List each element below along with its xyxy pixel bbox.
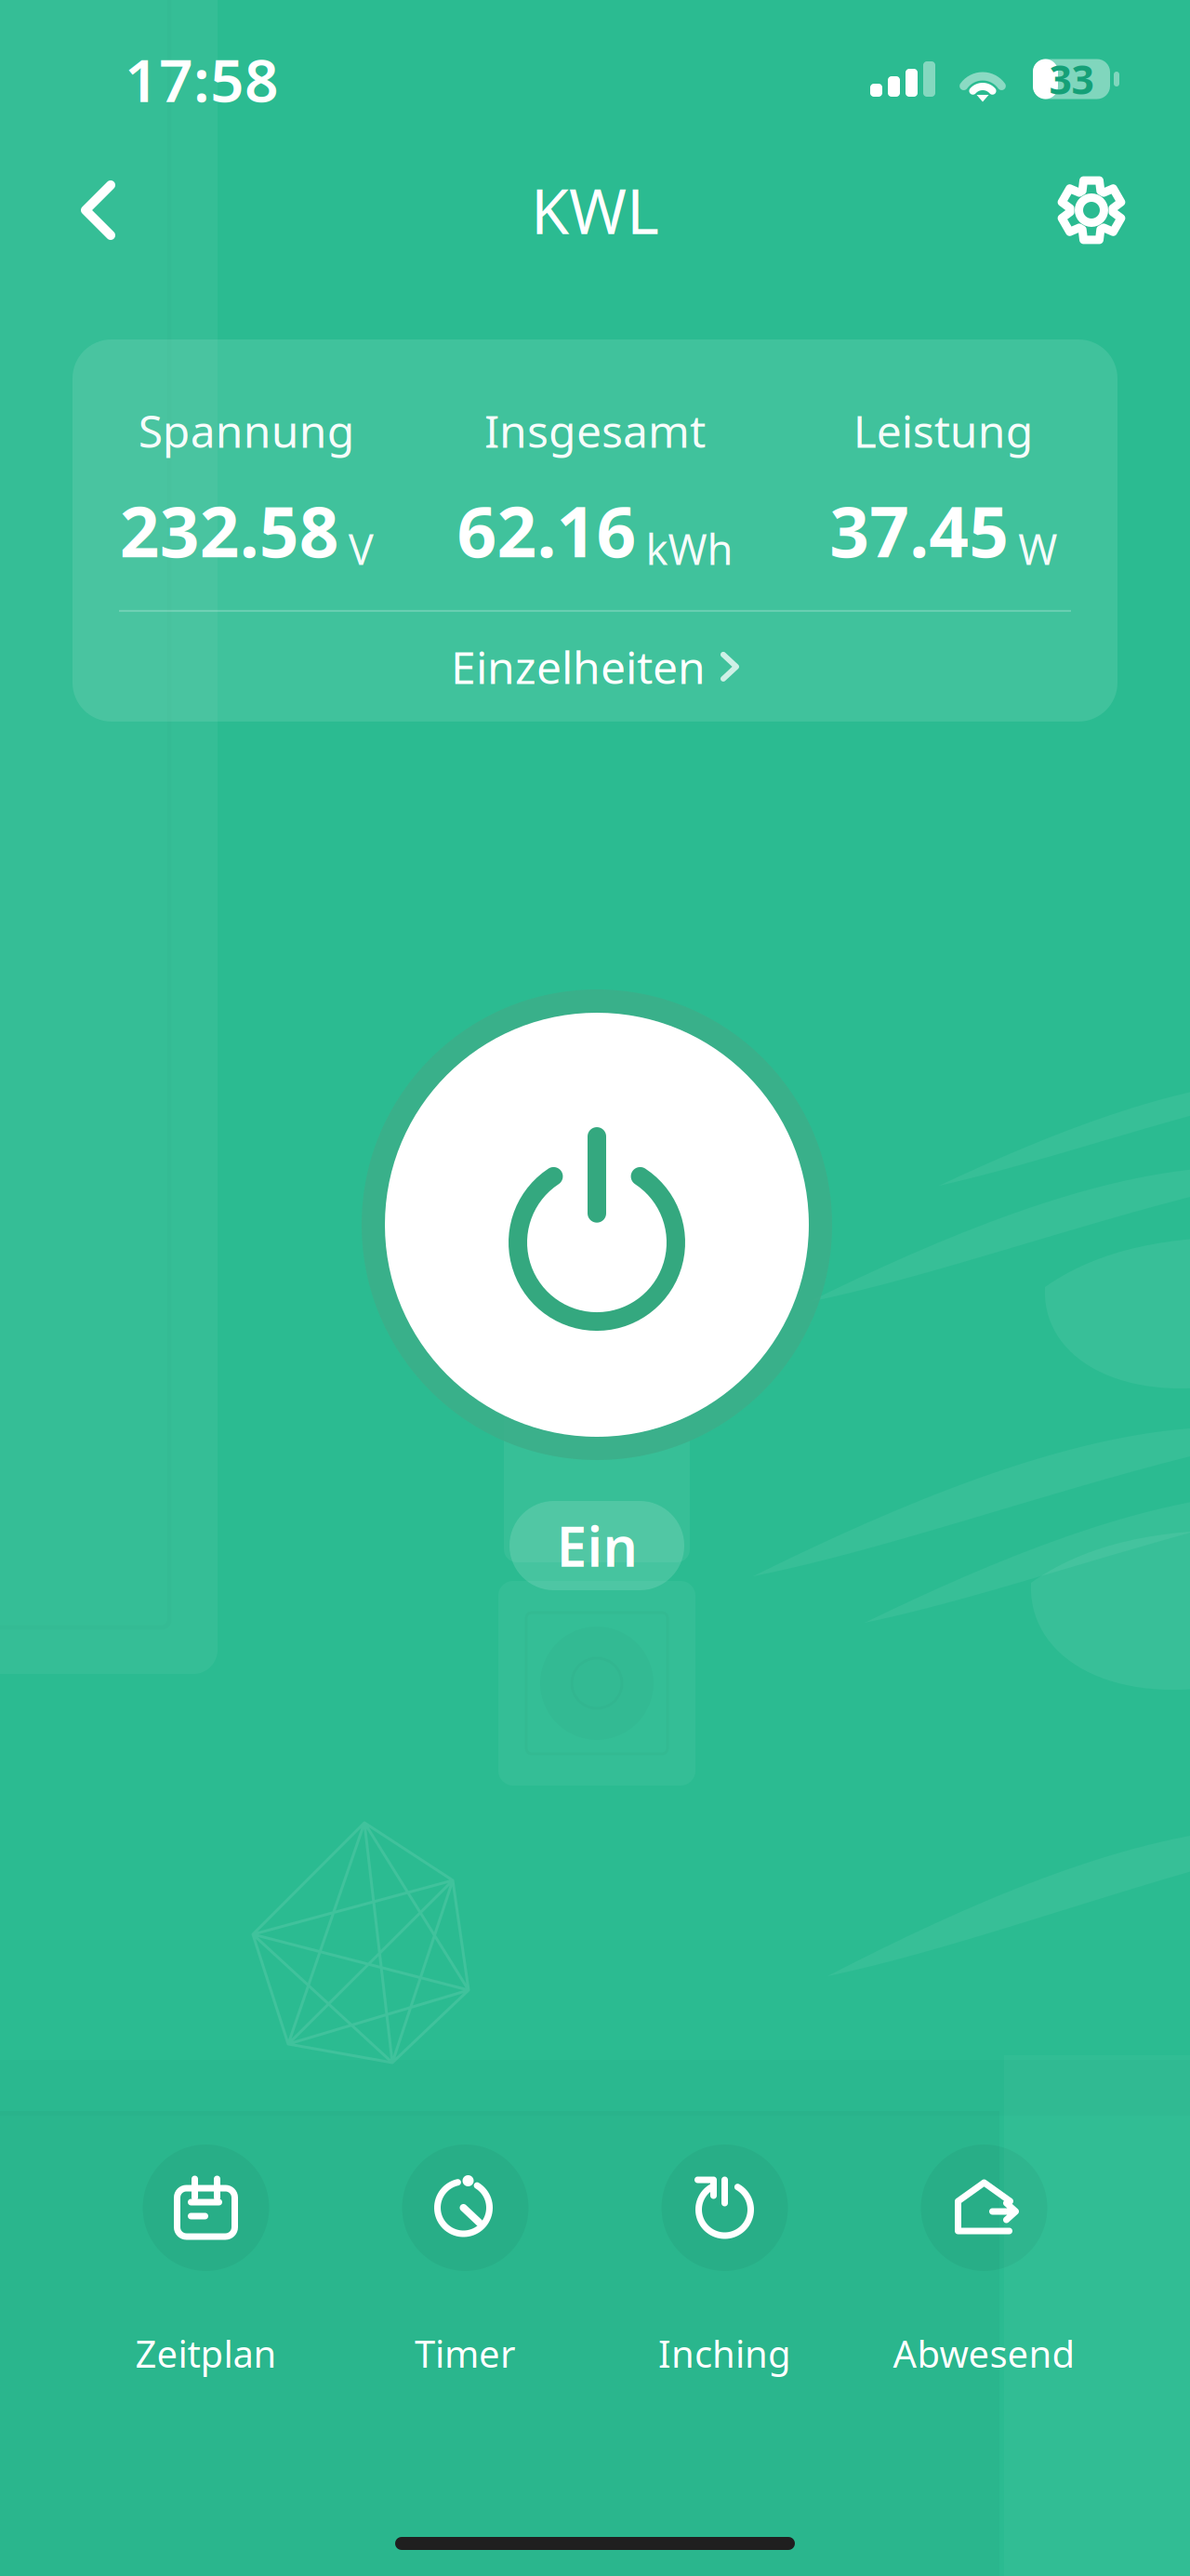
staticText: Ein [556, 1509, 637, 1582]
button[interactable]: Abwesend [854, 2144, 1114, 2378]
button[interactable]: Zeitplan [76, 2144, 336, 2378]
staticText: kWh [646, 521, 733, 576]
staticText: Zeitplan [135, 2329, 277, 2378]
staticText: Abwesend [893, 2329, 1075, 2378]
button[interactable]: Inching [595, 2144, 854, 2378]
staticText: 37.45 [829, 484, 1009, 576]
staticText: Insgesamt [484, 401, 706, 460]
button[interactable]: Back [43, 154, 154, 266]
staticText: Timer [415, 2329, 516, 2378]
staticText: Leistung [853, 401, 1034, 460]
button[interactable]: Einzelheiten [73, 612, 1117, 722]
button[interactable]: Timer [336, 2144, 595, 2378]
staticText: Inching [658, 2329, 791, 2378]
staticText: Spannung [138, 401, 355, 460]
staticText: V [348, 521, 374, 576]
staticText: 232.58 [120, 484, 339, 576]
staticText: KWL [531, 169, 659, 251]
staticText: 17:58 [125, 40, 279, 119]
staticText: 33 [1049, 53, 1094, 105]
staticText: 62.16 [457, 484, 636, 576]
staticText: W [1018, 521, 1057, 576]
staticText: Einzelheiten [451, 637, 706, 696]
button[interactable]: Settings [1036, 154, 1147, 266]
